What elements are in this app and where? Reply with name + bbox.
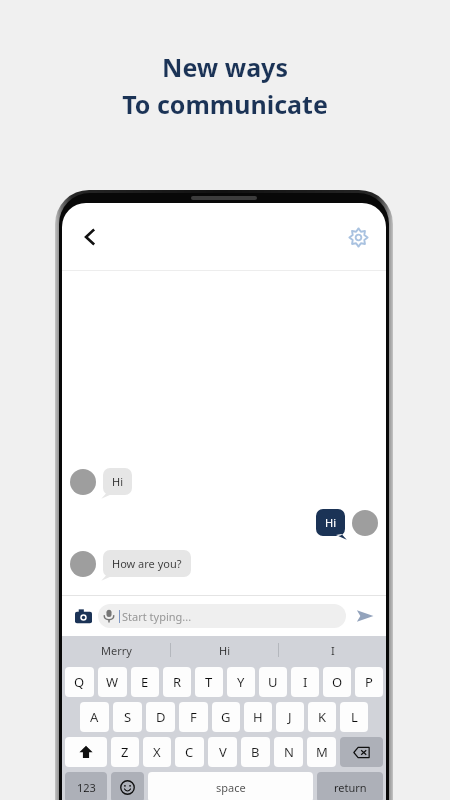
staticText: X	[153, 743, 161, 761]
button[interactable]: O	[323, 667, 351, 697]
button[interactable]: M	[307, 737, 336, 767]
button[interactable]: Back	[70, 217, 110, 257]
staticText: How are you?	[112, 556, 182, 571]
staticText: S	[124, 708, 132, 726]
button[interactable]: H	[244, 702, 272, 732]
button[interactable]: I	[279, 636, 386, 664]
button[interactable]: V	[208, 737, 237, 767]
staticText: O	[332, 673, 343, 691]
button[interactable]: Space	[148, 772, 313, 800]
staticText: Z	[121, 743, 129, 761]
staticText: Hi	[219, 643, 230, 658]
button[interactable]: Hi	[103, 468, 132, 495]
button[interactable]: Backspace	[340, 737, 383, 767]
staticText: T	[205, 673, 213, 691]
button[interactable]: Z	[111, 737, 139, 767]
staticText: W	[106, 673, 119, 691]
button[interactable]: N	[274, 737, 303, 767]
staticText: L	[351, 708, 358, 726]
staticText: P	[365, 673, 373, 691]
button[interactable]: Hi	[316, 509, 345, 536]
button[interactable]: F	[179, 702, 208, 732]
button[interactable]: Return	[317, 772, 383, 800]
staticText: C	[185, 743, 194, 761]
button[interactable]: J	[276, 702, 304, 732]
button[interactable]: Camera	[70, 603, 96, 629]
button[interactable]: Emoji	[111, 772, 144, 800]
staticText: G	[221, 708, 231, 726]
button[interactable]: Send	[352, 603, 378, 629]
button[interactable]: A	[80, 702, 109, 732]
button[interactable]: Contact avatar	[70, 469, 96, 495]
staticText: F	[190, 708, 197, 726]
staticText: Q	[74, 673, 85, 691]
button[interactable]: Contact avatar	[70, 551, 96, 577]
staticText: R	[173, 673, 182, 691]
button[interactable]: T	[195, 667, 223, 697]
button[interactable]: How are you?	[103, 550, 191, 577]
button[interactable]: Your avatar	[352, 510, 378, 536]
staticText: New ways	[162, 50, 288, 84]
button[interactable]: W	[98, 667, 127, 697]
button[interactable]: L	[340, 702, 368, 732]
staticText: D	[156, 708, 166, 726]
staticText: Y	[237, 673, 245, 691]
staticText: Hi	[325, 515, 336, 530]
button[interactable]: B	[241, 737, 270, 767]
button[interactable]: D	[146, 702, 175, 732]
staticText: Merry	[101, 643, 132, 658]
button[interactable]: I	[291, 667, 319, 697]
staticText: B	[251, 743, 260, 761]
staticText: V	[219, 743, 227, 761]
button[interactable]: R	[163, 667, 191, 697]
staticText: space	[216, 780, 246, 795]
staticText: E	[141, 673, 149, 691]
button[interactable]: U	[259, 667, 287, 697]
staticText: Start typing...	[122, 609, 192, 624]
button[interactable]: P	[355, 667, 383, 697]
button[interactable]: Start typing...	[98, 604, 346, 628]
button[interactable]: Merry	[62, 636, 170, 664]
staticText: K	[318, 708, 327, 726]
button[interactable]: Shift	[65, 737, 107, 767]
button[interactable]: X	[143, 737, 171, 767]
staticText: H	[253, 708, 263, 726]
staticText: Hi	[112, 474, 123, 489]
button[interactable]: G	[212, 702, 240, 732]
button[interactable]: Numbers	[65, 772, 107, 800]
button[interactable]: Settings	[340, 219, 376, 255]
staticText: I	[303, 673, 308, 691]
button[interactable]: S	[113, 702, 142, 732]
staticText: M	[316, 743, 328, 761]
staticText: A	[90, 708, 99, 726]
button[interactable]: Hi	[171, 636, 278, 664]
staticText: U	[268, 673, 278, 691]
button[interactable]: Y	[227, 667, 255, 697]
staticText: J	[288, 708, 292, 726]
button[interactable]: K	[308, 702, 336, 732]
staticText: To communicate	[122, 87, 328, 121]
staticText: return	[334, 780, 367, 795]
staticText: I	[331, 643, 335, 658]
staticText: 123	[77, 780, 96, 795]
button[interactable]: E	[131, 667, 159, 697]
button[interactable]: C	[175, 737, 204, 767]
button[interactable]: Q	[65, 667, 94, 697]
staticText: N	[284, 743, 294, 761]
